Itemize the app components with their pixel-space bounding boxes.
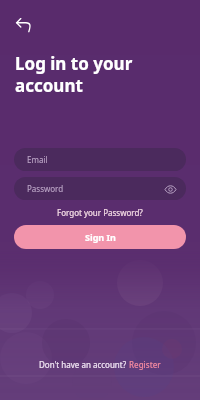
staticText: Don't have an account? (39, 359, 129, 370)
staticText: Register (129, 359, 161, 370)
button[interactable]: Email (14, 148, 186, 171)
staticText: Sign In (85, 231, 116, 243)
button[interactable]: Password (14, 177, 186, 200)
staticText: Log in to your account (15, 52, 133, 97)
button[interactable]: Show password (163, 182, 177, 196)
button[interactable]: Back (11, 12, 37, 38)
button[interactable]: Forgot your Password? (53, 205, 147, 220)
button[interactable]: Sign In (14, 225, 186, 249)
button[interactable]: Don't have an account? (39, 359, 161, 370)
staticText: Email (27, 154, 48, 165)
staticText: Forgot your Password? (57, 207, 143, 218)
staticText: Password (27, 183, 64, 194)
